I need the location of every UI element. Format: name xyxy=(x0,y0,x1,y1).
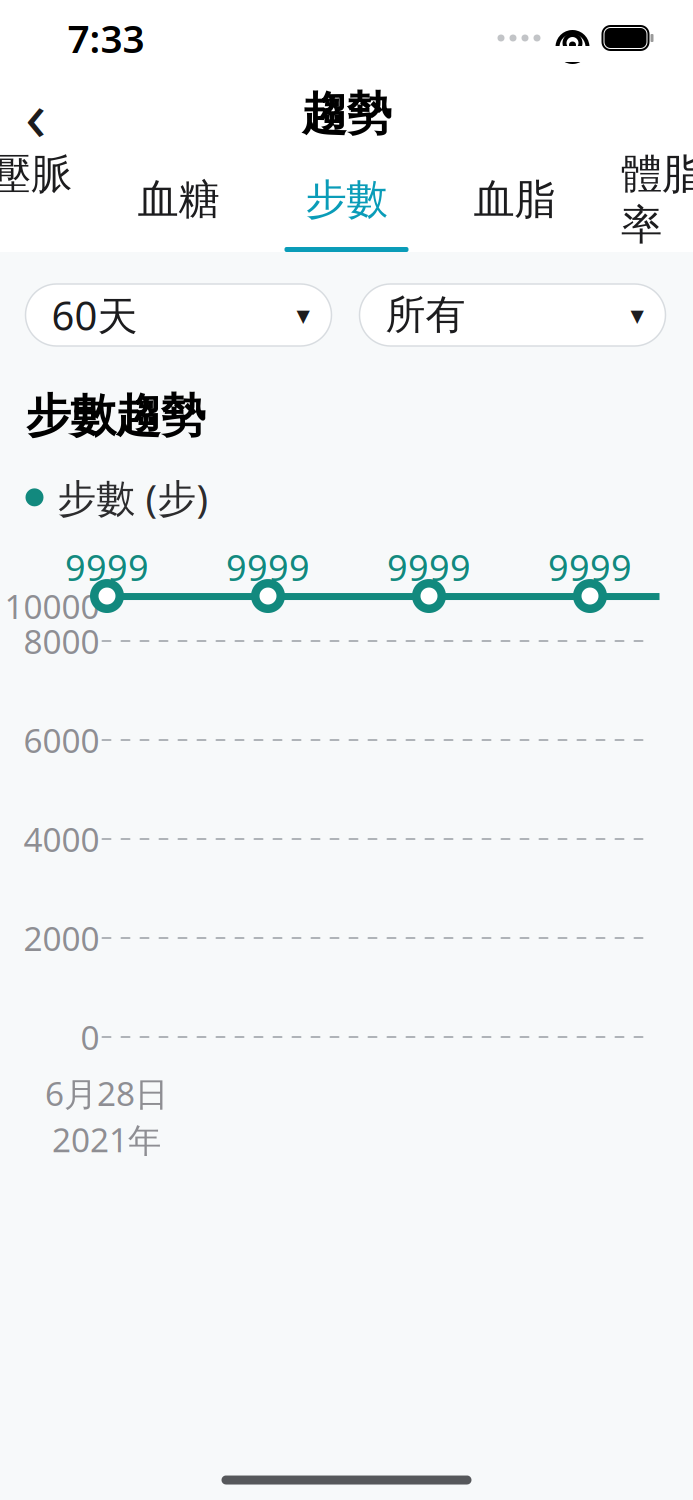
staticText: 9999 xyxy=(65,543,149,591)
staticText: 2000 xyxy=(23,916,99,960)
button[interactable]: Back xyxy=(0,78,71,150)
staticText: ‹ xyxy=(25,68,46,160)
staticText: 血脂 xyxy=(473,174,555,225)
staticText: 趨勢 xyxy=(301,86,391,142)
staticText: 體脂肪率 xyxy=(621,149,693,250)
button[interactable]: 步數 xyxy=(262,152,430,252)
button[interactable]: 血脂 xyxy=(430,152,598,252)
staticText: 所有 xyxy=(385,290,465,339)
button[interactable]: 血壓脈搏 xyxy=(0,152,94,252)
staticText: 60天 xyxy=(51,288,137,341)
staticText: 6000 xyxy=(23,718,99,762)
staticText: 9999 xyxy=(387,543,471,591)
staticText: ▾ xyxy=(296,300,309,330)
staticText: 9999 xyxy=(548,543,632,591)
staticText: 4000 xyxy=(23,817,99,861)
button[interactable]: 60天 xyxy=(25,284,331,346)
button[interactable]: 體脂肪率 xyxy=(598,152,693,252)
staticText: 步數 (步) xyxy=(57,472,208,523)
staticText: 2021年 xyxy=(52,1117,161,1162)
staticText: 6月28日 xyxy=(45,1071,168,1115)
staticText: ▾ xyxy=(630,300,643,330)
button[interactable]: 血糖 xyxy=(94,152,262,252)
staticText: 血糖 xyxy=(137,174,219,225)
button[interactable]: 所有 xyxy=(359,284,665,346)
staticText: 10000 xyxy=(4,584,99,628)
staticText: 8000 xyxy=(23,619,99,663)
staticText: 血壓脈搏 xyxy=(0,149,72,250)
staticText: 步數 xyxy=(305,174,387,225)
staticText: 步數趨勢 xyxy=(25,388,205,444)
staticText: 9999 xyxy=(226,543,310,591)
staticText: 0 xyxy=(80,1015,99,1059)
staticText: 7:33 xyxy=(67,12,144,64)
